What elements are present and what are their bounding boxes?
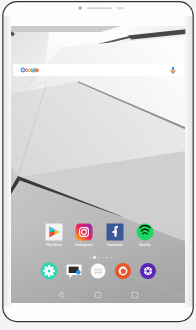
- button[interactable]: Camera: [138, 261, 158, 281]
- button[interactable]: Back: [52, 288, 70, 302]
- button[interactable]: Apps: [88, 261, 108, 281]
- staticText: Spotify: [131, 242, 159, 247]
- button[interactable]: Recents: [126, 288, 144, 302]
- staticText: Facebook: [101, 242, 129, 247]
- button[interactable]: Home: [89, 288, 107, 302]
- button[interactable]: Instagram: [70, 222, 98, 248]
- button[interactable]: Google Search: [13, 64, 184, 76]
- button[interactable]: Facebook: [101, 222, 129, 248]
- button[interactable]: Spotify: [131, 222, 159, 248]
- button[interactable]: Browser: [113, 261, 133, 281]
- button[interactable]: Settings: [39, 261, 59, 281]
- staticText: Play Store: [40, 242, 68, 247]
- button[interactable]: Messages: [64, 261, 84, 281]
- button[interactable]: Play Store: [40, 222, 68, 248]
- staticText: Instagram: [70, 242, 98, 247]
